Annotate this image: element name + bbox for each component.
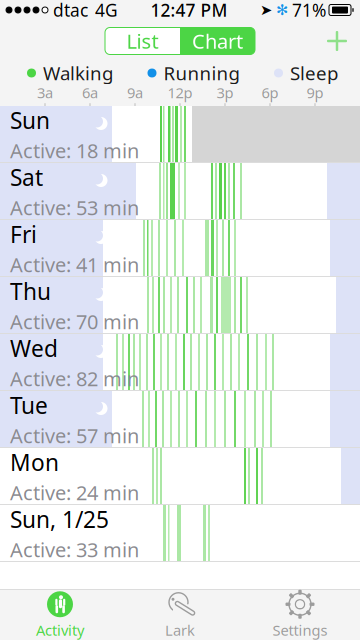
staticText: Sun, 1/25 <box>10 504 109 534</box>
staticText: dtac <box>53 0 88 21</box>
button[interactable]: Wed <box>0 334 360 391</box>
button[interactable]: Tue <box>0 391 360 448</box>
button[interactable]: Fri <box>0 220 360 277</box>
staticText: Walking <box>43 61 113 85</box>
staticText: 3a <box>37 83 53 102</box>
button[interactable]: Mon <box>0 448 360 505</box>
staticText: Active: 82 min <box>10 365 139 392</box>
staticText: ➤ <box>260 2 272 18</box>
staticText: 3p <box>216 83 233 102</box>
button[interactable]: Sun <box>0 106 360 163</box>
staticText: Running <box>163 61 239 85</box>
staticText: Active: 57 min <box>10 422 139 449</box>
staticText: Sat <box>10 162 43 192</box>
staticText: Active: 53 min <box>10 194 139 221</box>
staticText: Active: 33 min <box>10 536 139 563</box>
staticText: Mon <box>10 447 59 477</box>
staticText: Fri <box>10 219 37 249</box>
staticText: Tue <box>10 390 48 420</box>
staticText: 71% <box>292 0 326 21</box>
staticText: Lark <box>165 620 195 640</box>
staticText: Active: 24 min <box>10 479 139 506</box>
staticText: 12:47 PM <box>150 0 227 21</box>
button[interactable]: List <box>105 27 180 54</box>
staticText: 6a <box>82 83 98 102</box>
staticText: List <box>126 28 158 54</box>
staticText: 6p <box>261 83 278 102</box>
button[interactable]: Sat <box>0 163 360 220</box>
staticText: Wed <box>10 333 58 363</box>
button[interactable]: Lark <box>120 590 240 639</box>
staticText: Settings <box>272 620 327 640</box>
staticText: Chart <box>192 28 243 54</box>
staticText: 4G <box>95 0 118 21</box>
staticText: Active: 70 min <box>10 308 139 335</box>
button[interactable]: Settings <box>240 590 360 639</box>
staticText: Active: 18 min <box>10 137 139 164</box>
staticText: 9a <box>127 83 143 102</box>
staticText: Sleep <box>290 61 338 85</box>
staticText: Sun <box>10 105 50 135</box>
staticText: 9p <box>306 83 323 102</box>
button[interactable]: Chart <box>180 27 255 54</box>
button[interactable]: Thu <box>0 277 360 334</box>
staticText: 12p <box>167 83 192 102</box>
staticText: Thu <box>10 276 51 306</box>
staticText: Activity <box>36 620 84 640</box>
staticText: ✻ <box>276 2 288 18</box>
button[interactable]: Add <box>317 21 357 61</box>
button[interactable]: Sun, 1/25 <box>0 505 360 562</box>
staticText: Active: 41 min <box>10 251 139 278</box>
button[interactable]: Activity <box>0 590 120 639</box>
